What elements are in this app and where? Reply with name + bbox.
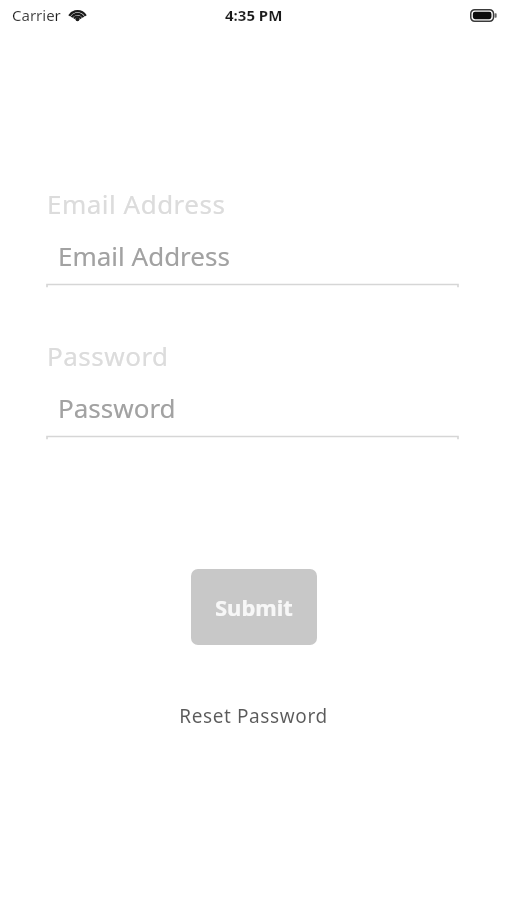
staticText: Password	[58, 390, 176, 425]
staticText: Password	[47, 338, 169, 373]
button[interactable]: Email Address	[47, 238, 458, 286]
staticText: Email Address	[58, 238, 230, 273]
staticText: 4:35 PM	[225, 5, 283, 25]
staticText: Carrier	[12, 5, 61, 25]
staticText: Submit	[215, 592, 293, 622]
staticText: Reset Password	[179, 703, 328, 729]
button[interactable]: Password	[47, 390, 458, 438]
other: Wi-Fi signal	[68, 7, 87, 21]
button[interactable]: Submit	[191, 569, 317, 645]
other: Battery full	[470, 9, 497, 22]
button[interactable]: Reset Password	[171, 699, 336, 733]
staticText: Email Address	[47, 186, 226, 221]
